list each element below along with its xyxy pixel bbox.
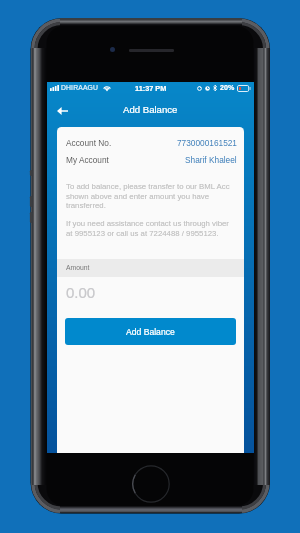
staticText: 20% [220,84,235,92]
staticText: To add balance, please transfer to our B… [66,182,231,209]
staticText: Add Balance [126,327,175,337]
staticText: Add Balance [123,104,178,115]
staticText: If you need assistance contact us throug… [66,219,231,237]
staticText: 7730000161521 [177,138,237,147]
button[interactable]: Account No. [57,133,244,151]
button[interactable]: Add Balance [65,318,236,345]
staticText: DHIRAAGU [61,84,99,92]
button[interactable]: My Account [57,150,244,168]
staticText: Account No. [66,138,112,147]
staticText: Amount [66,264,90,272]
staticText: 11:37 PM [135,84,167,92]
button[interactable]: Back [53,102,71,120]
staticText: My Account [66,155,109,164]
staticText: Sharif Khaleel [185,155,237,164]
staticText: 0.00 [66,284,96,301]
